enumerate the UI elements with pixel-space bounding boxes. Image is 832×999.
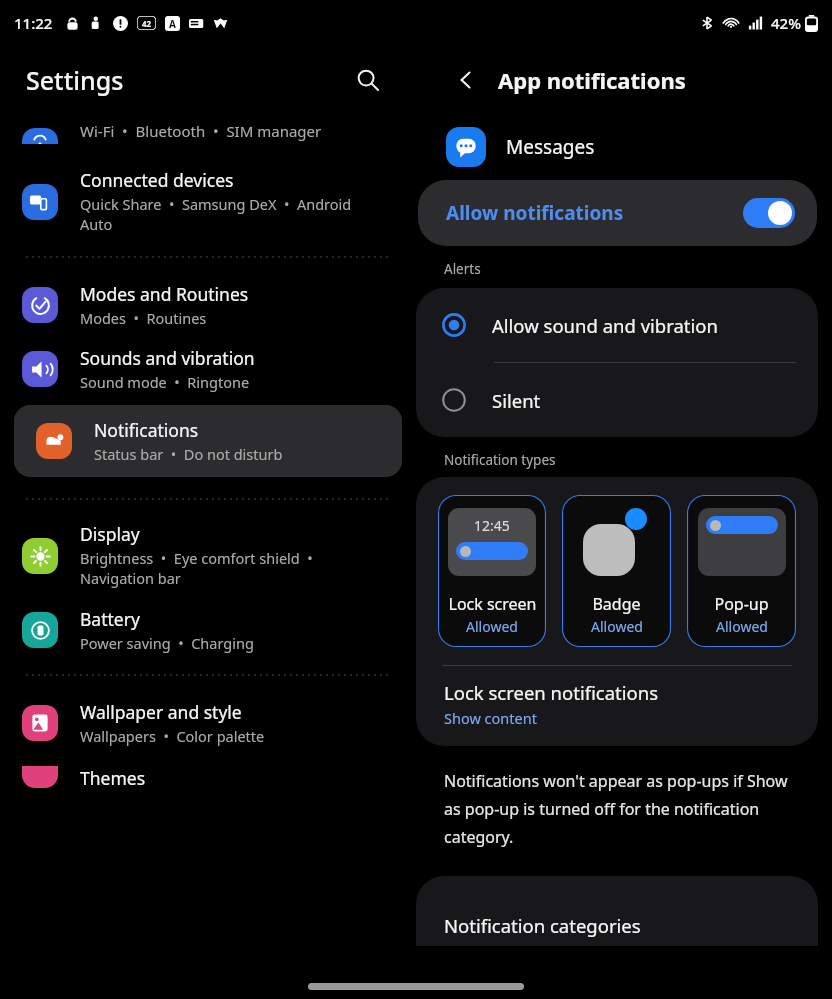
button[interactable]: Pop-up: [687, 495, 796, 647]
staticText: Alerts: [444, 260, 481, 278]
staticText: Lock screen: [448, 593, 537, 615]
staticText: Lock screen notifications: [444, 680, 658, 705]
staticText: Notifications won't appear as pop-ups if…: [444, 770, 808, 848]
staticText: Notification categories: [444, 913, 641, 938]
staticText: A: [169, 17, 176, 31]
button[interactable]: Battery: [0, 607, 416, 653]
button[interactable]: Notification categories: [416, 876, 818, 946]
staticText: Wallpaper and style: [80, 700, 242, 724]
button[interactable]: Sounds and vibration: [0, 346, 416, 392]
button[interactable]: Themes: [0, 766, 416, 800]
staticText: Notifications: [94, 418, 199, 442]
staticText: Status bar • Do not disturb: [94, 444, 283, 464]
button[interactable]: Connected devices: [0, 168, 416, 235]
button[interactable]: Wallpaper and style: [0, 700, 416, 746]
button[interactable]: Notifications: [14, 405, 402, 477]
staticText: Display: [80, 522, 140, 546]
staticText: Messages: [506, 134, 595, 160]
staticText: Themes: [80, 766, 146, 790]
staticText: 11:22: [14, 13, 53, 33]
staticText: Settings: [26, 63, 124, 97]
staticText: Show content: [444, 708, 537, 728]
button[interactable]: Search: [348, 60, 388, 100]
staticText: Modes and Routines: [80, 282, 249, 306]
staticText: 42%: [771, 13, 801, 33]
staticText: Allow sound and vibration: [492, 313, 718, 338]
staticText: Quick Share • Samsung DeX • Android Auto: [80, 194, 352, 235]
staticText: 12:45: [474, 516, 510, 535]
staticText: Badge: [592, 593, 641, 615]
staticText: Allowed: [466, 617, 518, 636]
staticText: Wallpapers • Color palette: [80, 726, 265, 746]
button[interactable]: Silent: [416, 363, 818, 437]
staticText: Wi-Fi • Bluetooth • SIM manager: [80, 121, 322, 141]
button[interactable]: Messages: [416, 114, 832, 180]
button[interactable]: 12:45: [438, 495, 546, 647]
staticText: Sound mode • Ringtone: [80, 372, 250, 392]
button[interactable]: Modes and Routines: [0, 282, 416, 328]
button[interactable]: Badge: [562, 495, 671, 647]
button[interactable]: Display: [0, 522, 416, 589]
staticText: Battery: [80, 607, 140, 631]
button[interactable]: Allow sound and vibration: [416, 288, 818, 362]
button[interactable]: Lock screen notifications: [416, 666, 818, 746]
staticText: Allowed: [716, 617, 768, 636]
staticText: Power saving • Charging: [80, 633, 254, 653]
staticText: Notification types: [444, 451, 556, 469]
button[interactable]: Allow notifications: [418, 180, 817, 246]
button[interactable]: Back: [446, 60, 486, 100]
staticText: 42: [142, 18, 152, 29]
staticText: Pop-up: [714, 593, 769, 615]
staticText: Silent: [492, 388, 541, 413]
staticText: Brightness • Eye comfort shield • Naviga…: [80, 548, 313, 589]
button[interactable]: Wi-Fi • Bluetooth • SIM manager: [0, 114, 416, 144]
staticText: Allowed: [591, 617, 643, 636]
staticText: Modes • Routines: [80, 308, 207, 328]
staticText: Connected devices: [80, 168, 234, 192]
staticText: Sounds and vibration: [80, 346, 255, 370]
staticText: Allow notifications: [446, 200, 624, 226]
staticText: App notifications: [498, 65, 686, 95]
